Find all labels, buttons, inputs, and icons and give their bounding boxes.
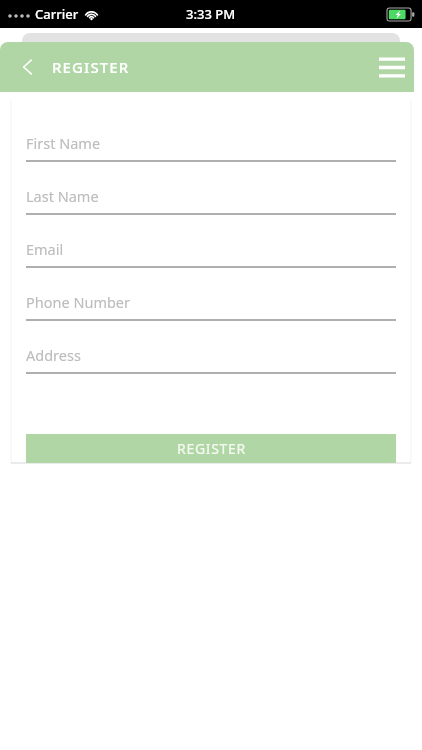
button[interactable]: REGISTER bbox=[26, 434, 396, 463]
button[interactable]: Last Name bbox=[26, 179, 396, 232]
button[interactable]: Address bbox=[26, 338, 396, 391]
staticText: First Name bbox=[26, 133, 101, 153]
button[interactable]: First Name bbox=[26, 126, 396, 179]
button[interactable]: Menu bbox=[370, 45, 414, 89]
button[interactable]: Back bbox=[8, 47, 48, 87]
staticText: REGISTER bbox=[177, 439, 246, 458]
staticText: Email bbox=[26, 239, 64, 259]
button[interactable]: Email bbox=[26, 232, 396, 285]
staticText: Phone Number bbox=[26, 292, 131, 312]
button[interactable]: Phone Number bbox=[26, 285, 396, 338]
staticText: 3:33 PM bbox=[186, 5, 236, 23]
staticText: Carrier bbox=[35, 5, 79, 23]
staticText: REGISTER bbox=[52, 57, 130, 77]
staticText: Last Name bbox=[26, 186, 99, 206]
staticText: Address bbox=[26, 345, 81, 365]
